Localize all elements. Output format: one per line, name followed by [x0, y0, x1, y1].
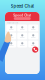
button[interactable]: Contact: [6, 32, 16, 39]
button[interactable]: Contact: [28, 40, 38, 47]
button[interactable]: Contact: [17, 24, 27, 31]
button[interactable]: Contact: [17, 40, 27, 47]
button[interactable]: Contact: [17, 32, 27, 39]
button[interactable]: Contact: [28, 24, 38, 31]
button[interactable]: Call: [32, 46, 38, 53]
staticText: Favourites: [7, 21, 18, 24]
button[interactable]: Contact: [6, 40, 16, 47]
button[interactable]: Contact: [28, 32, 38, 39]
staticText: Speed Chat: [13, 14, 31, 17]
button[interactable]: Contact: [6, 24, 16, 31]
staticText: Speed Chat: [10, 4, 33, 9]
